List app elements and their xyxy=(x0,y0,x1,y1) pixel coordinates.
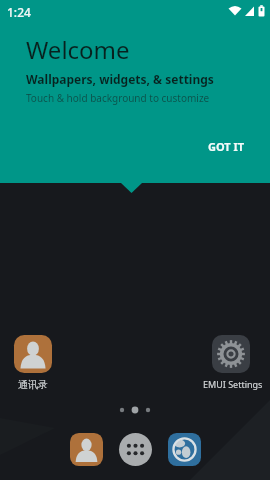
staticText: GOT IT xyxy=(208,139,245,154)
staticText: 通讯录 xyxy=(18,378,48,391)
button[interactable]: GOT IT xyxy=(197,130,255,162)
staticText: 1:24 xyxy=(7,4,31,20)
staticText: Welcome xyxy=(26,33,130,66)
button[interactable] xyxy=(70,433,103,466)
staticText: Wallpapers, widgets, & settings xyxy=(26,71,214,87)
button[interactable] xyxy=(119,433,152,466)
button[interactable] xyxy=(14,335,52,373)
button[interactable] xyxy=(168,433,201,466)
button[interactable] xyxy=(212,335,250,373)
staticText: EMUI Settings xyxy=(203,378,263,390)
staticText: Touch & hold background to customize xyxy=(26,91,210,105)
